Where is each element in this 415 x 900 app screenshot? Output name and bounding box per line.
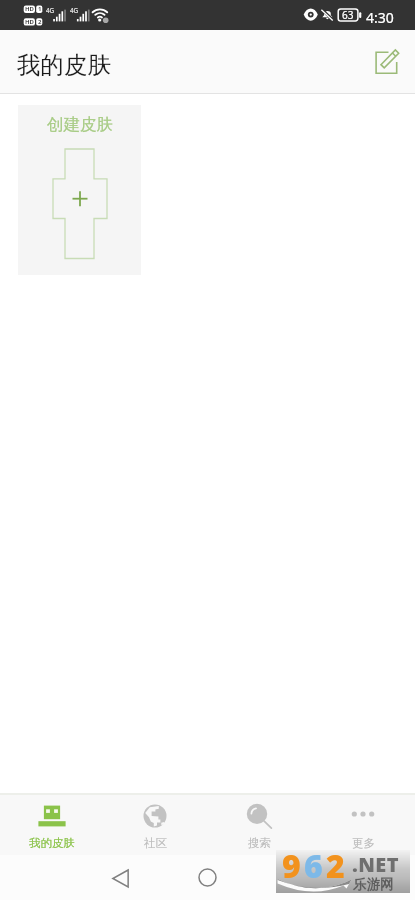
staticText: 社区: [144, 836, 167, 850]
button[interactable]: 搜索: [207, 795, 311, 855]
button[interactable]: Edit: [370, 40, 404, 74]
staticText: HD: [25, 18, 34, 26]
staticText: 63: [342, 8, 354, 22]
staticText: 乐游网: [353, 876, 394, 893]
button[interactable]: Home: [185, 855, 230, 900]
button[interactable]: 我的皮肤: [0, 795, 103, 855]
button[interactable]: 创建皮肤: [18, 105, 141, 275]
staticText: 4G: [46, 6, 55, 15]
staticText: 9: [282, 844, 304, 887]
staticText: HD: [25, 5, 34, 13]
staticText: 1: [38, 5, 42, 13]
staticText: 搜索: [248, 836, 271, 850]
staticText: 6: [304, 844, 326, 887]
staticText: 我的皮肤: [17, 50, 111, 80]
staticText: 我的皮肤: [29, 836, 75, 850]
button[interactable]: 社区: [103, 795, 207, 855]
staticText: 4G: [70, 6, 79, 15]
staticText: 更多: [352, 836, 375, 850]
staticText: 4:30: [366, 8, 394, 27]
staticText: 2: [326, 844, 348, 887]
button[interactable]: Back: [98, 856, 142, 900]
staticText: 2: [38, 18, 42, 26]
button[interactable]: 更多: [311, 795, 415, 855]
staticText: 创建皮肤: [47, 114, 113, 135]
staticText: .NET: [352, 851, 399, 878]
